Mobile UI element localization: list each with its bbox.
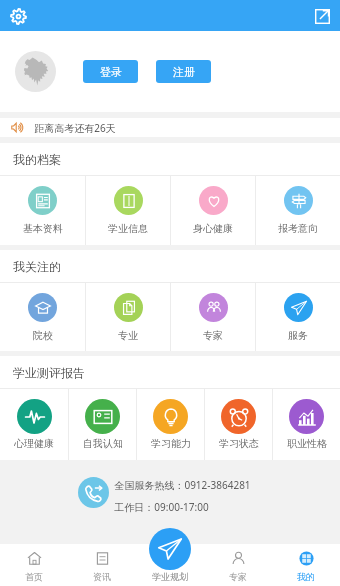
staticText: 距离高考还有26天 [34, 121, 116, 135]
button[interactable]: 服务 [256, 293, 340, 342]
staticText: 院校 [33, 329, 53, 342]
button[interactable]: 登录 [83, 60, 138, 83]
button[interactable]: 专业 [86, 293, 170, 342]
button[interactable]: 首页 [0, 544, 68, 586]
staticText: 基本资料 [23, 222, 63, 235]
staticText: 学习状态 [219, 437, 259, 450]
button[interactable]: 学业规划 [149, 528, 191, 570]
button[interactable]: 专家 [204, 544, 272, 586]
staticText: 报考意向 [278, 222, 318, 235]
button[interactable]: Avatar [15, 51, 56, 92]
button[interactable]: 基本资料 [0, 186, 85, 235]
button[interactable]: 学业规划 [136, 544, 204, 586]
staticText: 我的档案 [13, 152, 61, 167]
staticText: 学业规划 [152, 571, 188, 582]
staticText: 自我认知 [83, 437, 123, 450]
staticText: 身心健康 [193, 222, 233, 235]
button[interactable]: 报考意向 [256, 186, 340, 235]
button[interactable]: 身心健康 [171, 186, 255, 235]
staticText: 我关注的 [13, 259, 61, 274]
staticText: 学业测评报告 [13, 365, 85, 380]
staticText: 全国服务热线：0912-3864281 [114, 478, 251, 492]
staticText: 职业性格 [287, 437, 327, 450]
staticText: 首页 [25, 571, 43, 582]
staticText: 我的 [297, 571, 315, 582]
staticText: 专家 [203, 329, 223, 342]
button[interactable]: 学习状态 [205, 399, 272, 450]
button[interactable]: 全国服务热线：0912-3864281 [0, 460, 340, 517]
staticText: 注册 [173, 65, 195, 79]
button[interactable]: 资讯 [68, 544, 136, 586]
staticText: 服务 [288, 329, 308, 342]
staticText: 学习能力 [151, 437, 191, 450]
button[interactable]: 院校 [0, 293, 85, 342]
button[interactable]: Settings [6, 4, 30, 28]
button[interactable]: 心理健康 [0, 399, 68, 450]
button[interactable]: 我的 [272, 544, 340, 586]
button[interactable]: 专家 [171, 293, 255, 342]
staticText: 登录 [100, 65, 122, 79]
button[interactable]: Share [310, 4, 334, 28]
button[interactable]: 注册 [156, 60, 211, 83]
button[interactable]: 学业信息 [86, 186, 170, 235]
staticText: 专业 [118, 329, 138, 342]
staticText: 专家 [229, 571, 247, 582]
staticText: 心理健康 [14, 437, 54, 450]
staticText: 学业信息 [108, 222, 148, 235]
button[interactable]: 距离高考还有26天 [0, 118, 340, 137]
staticText: 资讯 [93, 571, 111, 582]
staticText: 工作日：09:00-17:00 [114, 500, 209, 514]
button[interactable]: 学习能力 [137, 399, 204, 450]
button[interactable]: 自我认知 [69, 399, 136, 450]
button[interactable]: 职业性格 [273, 399, 340, 450]
